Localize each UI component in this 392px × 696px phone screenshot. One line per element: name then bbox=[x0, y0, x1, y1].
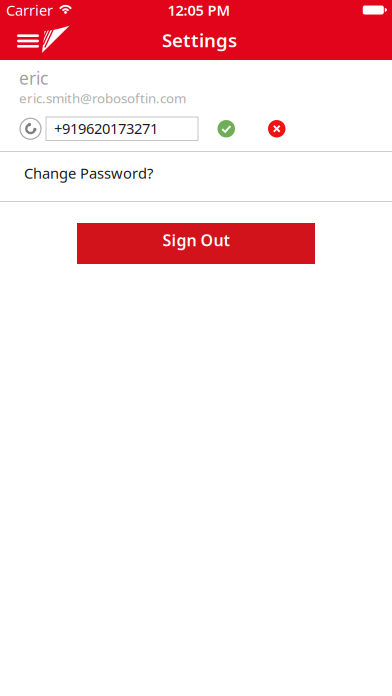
staticText: eric.smith@robosoftin.com bbox=[19, 89, 186, 107]
staticText: Settings bbox=[162, 28, 237, 52]
staticText: eric bbox=[19, 66, 48, 89]
button[interactable]: Change Password? bbox=[0, 152, 392, 201]
button[interactable]: Cancel bbox=[268, 120, 285, 137]
staticText: +919620173271 bbox=[54, 118, 158, 138]
button[interactable]: Menu bbox=[17, 34, 39, 48]
button[interactable]: Confirm phone number bbox=[217, 120, 235, 137]
staticText: Carrier bbox=[6, 0, 53, 20]
staticText: Change Password? bbox=[24, 163, 153, 183]
staticText: Sign Out bbox=[162, 229, 229, 251]
staticText: 12:05 PM bbox=[167, 0, 230, 20]
button[interactable]: Sign Out bbox=[77, 223, 315, 264]
